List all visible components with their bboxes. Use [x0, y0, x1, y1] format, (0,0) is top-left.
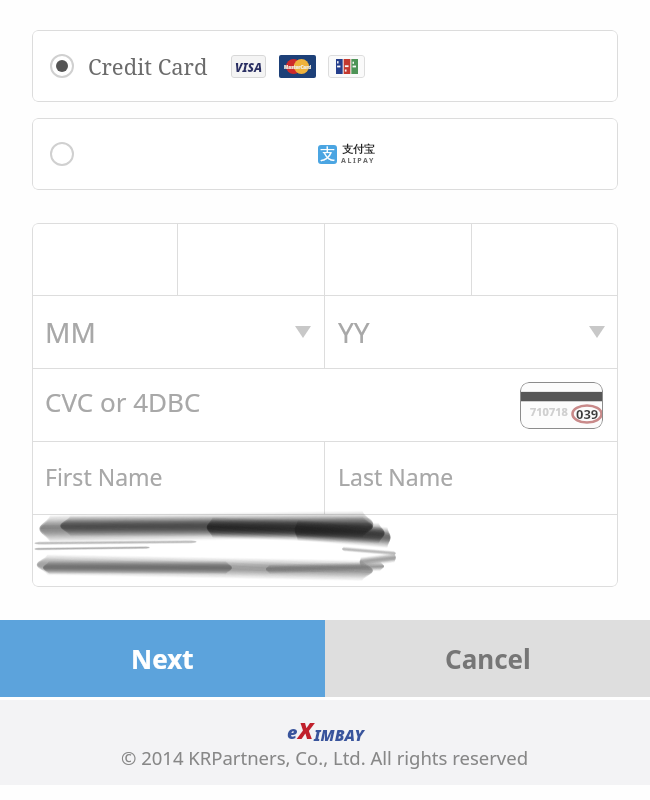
staticText: YY — [338, 313, 370, 351]
staticText: CVC or 4DBC — [45, 384, 201, 419]
staticText: 支 — [320, 145, 335, 164]
button[interactable]: Cancel — [325, 620, 650, 697]
staticText: ALIPAY — [341, 156, 375, 166]
staticText: 支付宝 — [342, 142, 375, 156]
staticText: Next — [131, 641, 194, 676]
staticText: Credit Card — [88, 51, 208, 81]
staticText: e — [287, 720, 298, 745]
button[interactable]: CVC help — [520, 382, 603, 429]
button[interactable]: Last Name — [325, 442, 618, 514]
staticText: X — [298, 714, 314, 745]
staticText: IMBAY — [314, 724, 364, 745]
button[interactable] — [32, 223, 177, 295]
staticText: Last Name — [338, 461, 454, 492]
button[interactable]: YY — [325, 296, 618, 368]
button[interactable]: First Name — [32, 442, 324, 514]
staticText: MM — [45, 313, 96, 351]
staticText: Cancel — [445, 641, 531, 676]
staticText: First Name — [45, 461, 163, 492]
button[interactable]: MM — [32, 296, 324, 368]
button[interactable] — [472, 223, 618, 295]
button[interactable] — [178, 223, 324, 295]
button[interactable]: Alipay payment option — [32, 118, 618, 190]
button[interactable] — [325, 223, 471, 295]
staticText: 039 — [576, 405, 599, 423]
staticText: MasterCard — [284, 64, 312, 70]
staticText: 710718 — [530, 404, 568, 419]
button[interactable]: Next — [0, 620, 325, 697]
staticText: VISA — [235, 59, 263, 75]
staticText: © 2014 KRPartners, Co., Ltd. All rights … — [121, 745, 529, 770]
button[interactable]: Credit Card payment option, selected — [32, 30, 618, 102]
button[interactable]: CVC or 4DBC — [32, 369, 618, 441]
